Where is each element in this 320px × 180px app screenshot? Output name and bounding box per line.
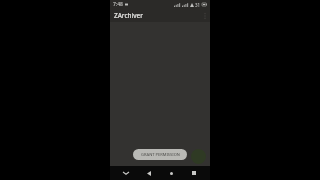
staticText: 31: [195, 2, 201, 8]
staticText: ZArchiver: [114, 11, 143, 20]
button[interactable]: Home: [164, 166, 178, 180]
button[interactable]: GRANT PERMISSION: [133, 149, 187, 160]
staticText: GRANT PERMISSION: [141, 152, 180, 157]
button[interactable]: Recent apps: [187, 166, 201, 180]
button[interactable]: Back: [142, 166, 156, 180]
staticText: 7:48: [113, 1, 123, 8]
button[interactable]: More options: [204, 12, 206, 20]
button[interactable]: Hide keyboard: [119, 166, 133, 180]
